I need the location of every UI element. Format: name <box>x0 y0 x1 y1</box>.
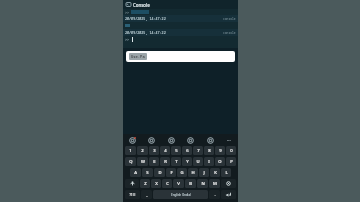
staticText: 20/09/2025, 14:47:22 <box>125 30 166 35</box>
staticText: E <box>153 159 156 165</box>
button[interactable]: More options <box>225 136 233 144</box>
button[interactable]: H <box>188 168 198 177</box>
button[interactable]: F <box>166 168 176 177</box>
button[interactable]: Console icon <box>126 2 131 7</box>
button[interactable]: S <box>142 168 153 177</box>
button[interactable]: E <box>149 157 159 166</box>
staticText: console <box>223 31 236 35</box>
staticText: console <box>223 17 236 21</box>
staticText: 7 <box>197 148 200 154</box>
button[interactable]: L <box>221 168 231 177</box>
button[interactable]: R <box>160 157 170 166</box>
staticText: O <box>218 159 222 165</box>
staticText: >> <box>125 10 130 15</box>
staticText: Use.Pa <box>131 54 145 59</box>
button[interactable]: A <box>130 168 141 177</box>
staticText: K <box>214 170 217 176</box>
button[interactable]: B <box>185 179 196 188</box>
staticText: P <box>230 159 233 165</box>
button[interactable]: Emoji <box>186 136 194 144</box>
button[interactable]: I <box>204 157 214 166</box>
staticText: X <box>155 181 158 187</box>
staticText: 4 <box>164 148 167 154</box>
button[interactable]: ?1☰ <box>125 190 140 199</box>
button[interactable]: Backspace <box>221 179 236 188</box>
button[interactable]: 20/09/2025, 14:47:22 <box>123 15 238 22</box>
staticText: V <box>177 181 180 187</box>
staticText: >> <box>125 37 130 42</box>
button[interactable]: 4 <box>160 146 170 155</box>
staticText: 2 <box>141 148 144 154</box>
button[interactable]: V <box>173 179 184 188</box>
staticText: 20/09/2025, 14:47:22 <box>125 16 166 21</box>
button[interactable]: Q <box>125 157 136 166</box>
staticText: 9 <box>219 148 222 154</box>
staticText: 3 <box>153 148 156 154</box>
staticText: A <box>134 170 137 176</box>
staticText: Y <box>186 159 189 165</box>
button[interactable]: N <box>197 179 208 188</box>
staticText: 0 <box>230 148 233 154</box>
button[interactable]: Enter <box>221 190 236 199</box>
staticText: 8 <box>208 148 211 154</box>
button[interactable]: Z <box>140 179 150 188</box>
staticText: H <box>191 170 195 176</box>
button[interactable]: 1 <box>125 146 136 155</box>
staticText: J <box>203 170 205 176</box>
button[interactable]: GIF <box>167 136 175 144</box>
button[interactable]: C <box>162 179 172 188</box>
button[interactable]: K <box>210 168 220 177</box>
button[interactable]: 6 <box>182 146 192 155</box>
button[interactable]: 7 <box>193 146 203 155</box>
staticText: D <box>158 170 162 176</box>
button[interactable]: W <box>137 157 148 166</box>
button[interactable]: T <box>171 157 181 166</box>
staticText: N <box>201 181 205 187</box>
staticText: I <box>208 159 210 165</box>
button[interactable]: 20/09/2025, 14:47:22 <box>123 29 238 36</box>
button[interactable]: Settings <box>206 136 214 144</box>
button[interactable]: J <box>199 168 209 177</box>
button[interactable]: X <box>151 179 161 188</box>
staticText: B <box>189 181 192 187</box>
button[interactable]: Shift <box>125 179 139 188</box>
button[interactable]: 2 <box>137 146 148 155</box>
button[interactable]: Y <box>182 157 192 166</box>
staticText: W <box>141 159 145 165</box>
staticText: S <box>146 170 149 176</box>
staticText: , <box>146 192 148 198</box>
staticText: T <box>175 159 178 165</box>
button[interactable]: 8 <box>204 146 214 155</box>
staticText: F <box>170 170 173 176</box>
button[interactable]: P <box>226 157 236 166</box>
staticText: C <box>166 181 169 187</box>
staticText: ··· <box>227 137 231 143</box>
staticText: . <box>214 192 216 198</box>
staticText: English (India) <box>171 193 191 197</box>
button[interactable]: 5 <box>171 146 181 155</box>
staticText: L <box>225 170 228 176</box>
staticText: ?1☰ <box>129 193 136 197</box>
button[interactable]: 0 <box>226 146 236 155</box>
staticText: 6 <box>186 148 189 154</box>
staticText: R <box>164 159 167 165</box>
button[interactable]: 9 <box>215 146 225 155</box>
button[interactable]: Clipboard <box>147 136 155 144</box>
button[interactable]: M <box>209 179 220 188</box>
button[interactable]: Google Assistant <box>128 136 136 144</box>
staticText: 1 <box>129 148 132 154</box>
staticText: 5 <box>175 148 178 154</box>
button[interactable]: G <box>177 168 187 177</box>
staticText: Q <box>129 159 133 165</box>
button[interactable]: U <box>193 157 203 166</box>
staticText: U <box>196 159 200 165</box>
staticText: Z <box>144 181 147 187</box>
button[interactable]: English (India) <box>153 190 208 199</box>
button[interactable]: D <box>154 168 165 177</box>
staticText: M <box>213 181 217 187</box>
button[interactable]: , <box>141 190 152 199</box>
button[interactable]: Use.Pa <box>126 51 235 62</box>
button[interactable]: 3 <box>149 146 159 155</box>
button[interactable]: O <box>215 157 225 166</box>
button[interactable]: . <box>209 190 220 199</box>
